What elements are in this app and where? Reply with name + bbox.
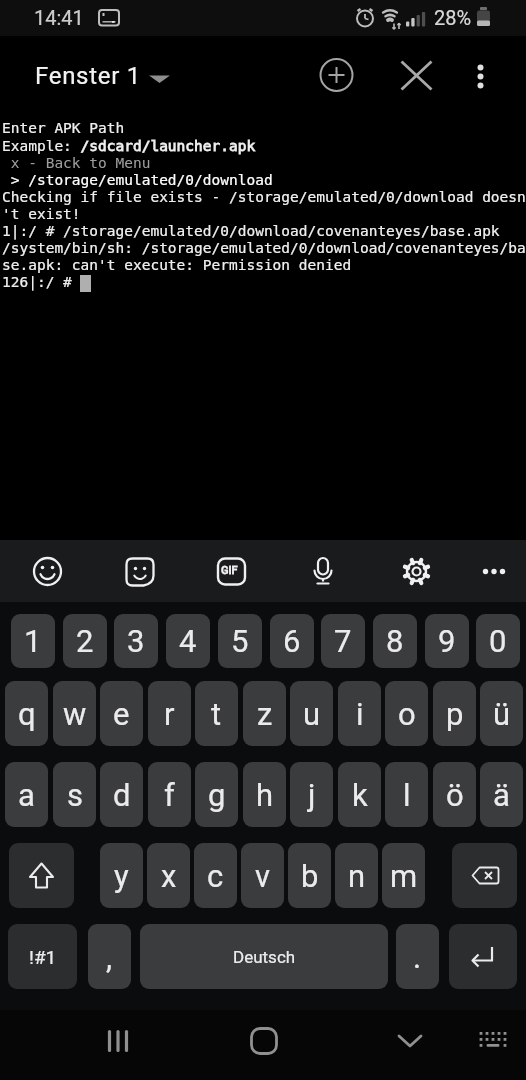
staticText: ü <box>493 696 511 732</box>
staticText: g <box>208 777 226 813</box>
button[interactable]: a <box>5 762 48 827</box>
button[interactable]: y <box>100 843 143 908</box>
button[interactable] <box>474 551 514 591</box>
button[interactable] <box>460 55 500 95</box>
button[interactable] <box>120 551 160 591</box>
button[interactable]: e <box>100 681 143 746</box>
button[interactable]: t <box>195 681 238 746</box>
button[interactable]: 6 <box>270 614 314 668</box>
staticText: u <box>303 696 321 732</box>
button[interactable] <box>244 1018 284 1064</box>
staticText: w <box>63 696 87 732</box>
button[interactable]: g <box>195 762 238 827</box>
button[interactable]: l <box>385 762 428 827</box>
button[interactable]: ö <box>433 762 476 827</box>
button[interactable]: u <box>290 681 333 746</box>
button[interactable]: b <box>288 843 331 908</box>
button[interactable]: Deutsch <box>140 924 388 989</box>
staticText: a <box>18 777 35 813</box>
button[interactable]: c <box>194 843 237 908</box>
button[interactable]: !#1 <box>8 924 77 989</box>
staticText: ä <box>493 777 510 813</box>
button[interactable]: 9 <box>425 614 469 668</box>
staticText: i <box>356 696 364 732</box>
staticText: c <box>207 858 224 894</box>
staticText: l <box>403 777 411 813</box>
button[interactable]: x <box>147 843 190 908</box>
button[interactable]: o <box>385 681 428 746</box>
button[interactable] <box>396 55 436 95</box>
button[interactable]: 1 <box>11 614 55 668</box>
button[interactable]: r <box>148 681 191 746</box>
staticText: 9 <box>438 623 456 659</box>
button[interactable]: d <box>100 762 143 827</box>
button[interactable] <box>211 551 251 591</box>
button[interactable] <box>452 843 517 908</box>
staticText: t <box>211 696 222 732</box>
staticText: , <box>106 939 113 975</box>
button[interactable] <box>316 55 356 95</box>
button[interactable] <box>9 843 74 908</box>
button[interactable]: , <box>88 924 131 989</box>
button[interactable]: h <box>243 762 286 827</box>
staticText: o <box>398 696 416 732</box>
staticText: Deutsch <box>233 947 296 967</box>
staticText: 2 <box>76 623 94 659</box>
staticText: 8 <box>386 623 404 659</box>
button[interactable]: 4 <box>166 614 210 668</box>
button[interactable]: v <box>241 843 284 908</box>
button[interactable]: z <box>243 681 286 746</box>
staticText: b <box>301 858 319 894</box>
staticText: z <box>257 696 273 732</box>
button[interactable]: 2 <box>63 614 107 668</box>
button[interactable]: i <box>338 681 381 746</box>
staticText: d <box>113 777 131 813</box>
staticText: h <box>256 777 274 813</box>
staticText: ö <box>446 777 464 813</box>
staticText: Enter APK Path Example: /sdcard/launcher… <box>2 120 526 290</box>
staticText: 1 <box>24 623 42 659</box>
button[interactable] <box>449 924 517 989</box>
staticText: n <box>348 858 366 894</box>
button[interactable] <box>98 1018 138 1064</box>
button[interactable]: 8 <box>373 614 417 668</box>
button[interactable]: f <box>148 762 191 827</box>
staticText: 4 <box>179 623 197 659</box>
staticText: 6 <box>283 623 301 659</box>
staticText: p <box>446 696 464 732</box>
button[interactable]: n <box>335 843 378 908</box>
staticText: GIF <box>221 564 238 577</box>
button[interactable]: 3 <box>114 614 158 668</box>
button[interactable]: . <box>396 924 439 989</box>
staticText: j <box>308 777 316 813</box>
button[interactable]: k <box>338 762 381 827</box>
button[interactable] <box>390 1018 430 1064</box>
staticText: k <box>352 777 368 813</box>
button[interactable]: m <box>382 843 425 908</box>
staticText: q <box>18 696 36 732</box>
button[interactable]: j <box>290 762 333 827</box>
button[interactable]: q <box>5 681 48 746</box>
staticText: m <box>390 858 418 894</box>
button[interactable]: s <box>53 762 96 827</box>
button[interactable]: Fenster 1 <box>35 62 141 90</box>
button[interactable] <box>473 1018 513 1064</box>
button[interactable]: 7 <box>321 614 365 668</box>
button[interactable]: p <box>433 681 476 746</box>
staticText: v <box>255 858 271 894</box>
staticText: e <box>113 696 130 732</box>
staticText: !#1 <box>29 946 57 968</box>
button[interactable]: 0 <box>476 614 520 668</box>
button[interactable]: ä <box>480 762 523 827</box>
button[interactable]: w <box>53 681 96 746</box>
button[interactable] <box>303 551 343 591</box>
staticText: 28% <box>434 6 472 29</box>
button[interactable]: 5 <box>218 614 262 668</box>
button[interactable]: ü <box>480 681 523 746</box>
staticText: 7 <box>334 623 352 659</box>
staticText: s <box>67 777 83 813</box>
staticText: y <box>114 858 129 894</box>
staticText: r <box>164 696 175 732</box>
button[interactable] <box>396 551 436 591</box>
button[interactable] <box>27 551 67 591</box>
